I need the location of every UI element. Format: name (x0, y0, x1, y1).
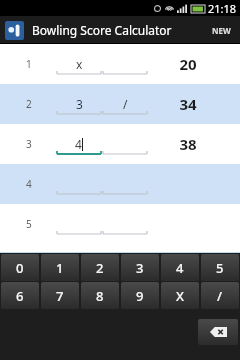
button[interactable]: Backspace (198, 319, 238, 345)
button[interactable]: 1 (0, 44, 240, 84)
button[interactable]: 9 (121, 282, 159, 309)
staticText: 0 (16, 259, 24, 277)
button[interactable]: 8 (81, 282, 119, 309)
staticText: 1 (56, 259, 64, 277)
staticText: 4 (75, 136, 82, 152)
button[interactable]: 2 (0, 84, 240, 124)
staticText: 4 (176, 259, 184, 277)
staticText: 3 (136, 259, 144, 277)
staticText: 3 (76, 96, 83, 112)
button[interactable]: 6 (1, 282, 39, 309)
staticText: x (76, 56, 83, 72)
staticText: 2 (96, 259, 104, 277)
button[interactable] (103, 212, 147, 236)
button[interactable] (57, 212, 101, 236)
staticText: 38 (168, 134, 208, 154)
staticText: 5 (26, 217, 32, 231)
staticText: / (217, 287, 223, 305)
button[interactable]: 3 (0, 124, 240, 164)
button[interactable] (103, 172, 147, 196)
button[interactable]: X (161, 282, 199, 309)
staticText: 1 (26, 57, 32, 71)
staticText: 9 (136, 287, 144, 305)
staticText: 21:18 (208, 1, 237, 16)
button[interactable]: x (57, 52, 101, 76)
button[interactable] (57, 172, 101, 196)
button[interactable]: 0 (1, 254, 39, 281)
staticText: 4 (26, 177, 32, 191)
button[interactable]: App icon (5, 21, 24, 40)
staticText: / (123, 96, 128, 112)
button[interactable]: 4 (57, 132, 101, 156)
staticText: 6 (16, 287, 24, 305)
staticText: 7 (56, 287, 64, 305)
button[interactable]: 7 (41, 282, 79, 309)
staticText: 8 (96, 287, 104, 305)
button[interactable]: 4 (161, 254, 199, 281)
staticText: NEW (212, 25, 231, 36)
button[interactable] (103, 52, 147, 76)
button[interactable]: / (201, 282, 239, 309)
button[interactable]: 2 (81, 254, 119, 281)
button[interactable]: / (103, 92, 147, 116)
button[interactable]: 3 (57, 92, 101, 116)
button[interactable]: NEW (209, 21, 234, 40)
button[interactable]: 3 (121, 254, 159, 281)
staticText: 2 (26, 97, 32, 111)
button[interactable]: 5 (0, 204, 240, 244)
button[interactable] (103, 132, 147, 156)
staticText: 3 (26, 137, 32, 151)
staticText: X (176, 287, 184, 305)
staticText: 20 (168, 54, 208, 74)
button[interactable]: 4 (0, 164, 240, 204)
staticText: Bowling Score Calculator (32, 22, 172, 38)
button[interactable]: 5 (201, 254, 239, 281)
staticText: 34 (168, 94, 208, 114)
button[interactable]: 1 (41, 254, 79, 281)
staticText: 5 (216, 259, 224, 277)
